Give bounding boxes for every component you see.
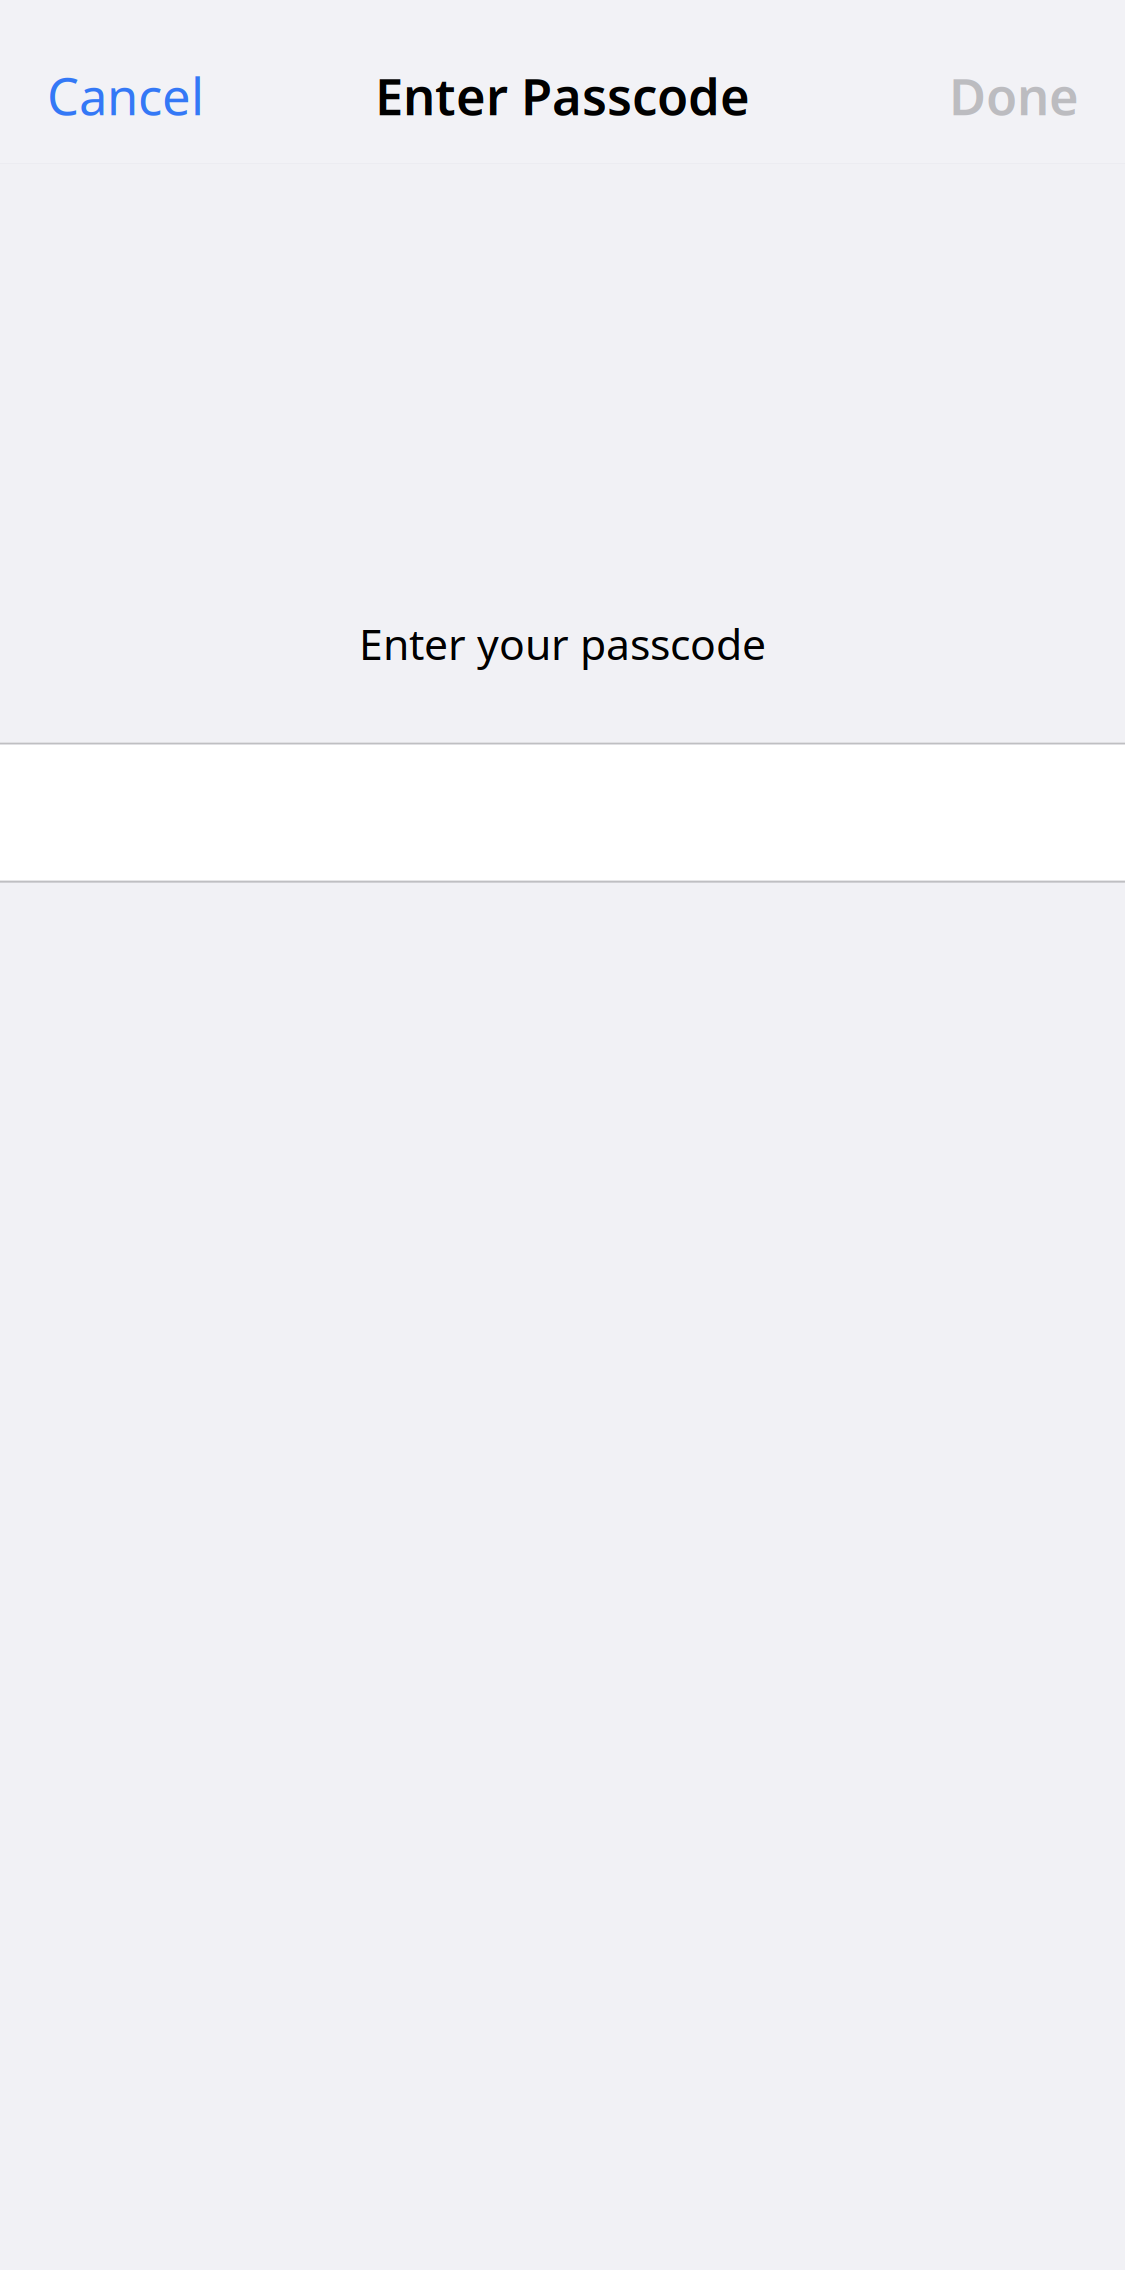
staticText: Cancel [47,62,204,129]
staticText: Done [949,62,1079,129]
staticText: Enter Passcode [375,62,750,129]
staticText: Enter your passcode [359,615,766,672]
button[interactable]: Done [919,38,1125,153]
button[interactable]: Cancel [0,38,234,153]
